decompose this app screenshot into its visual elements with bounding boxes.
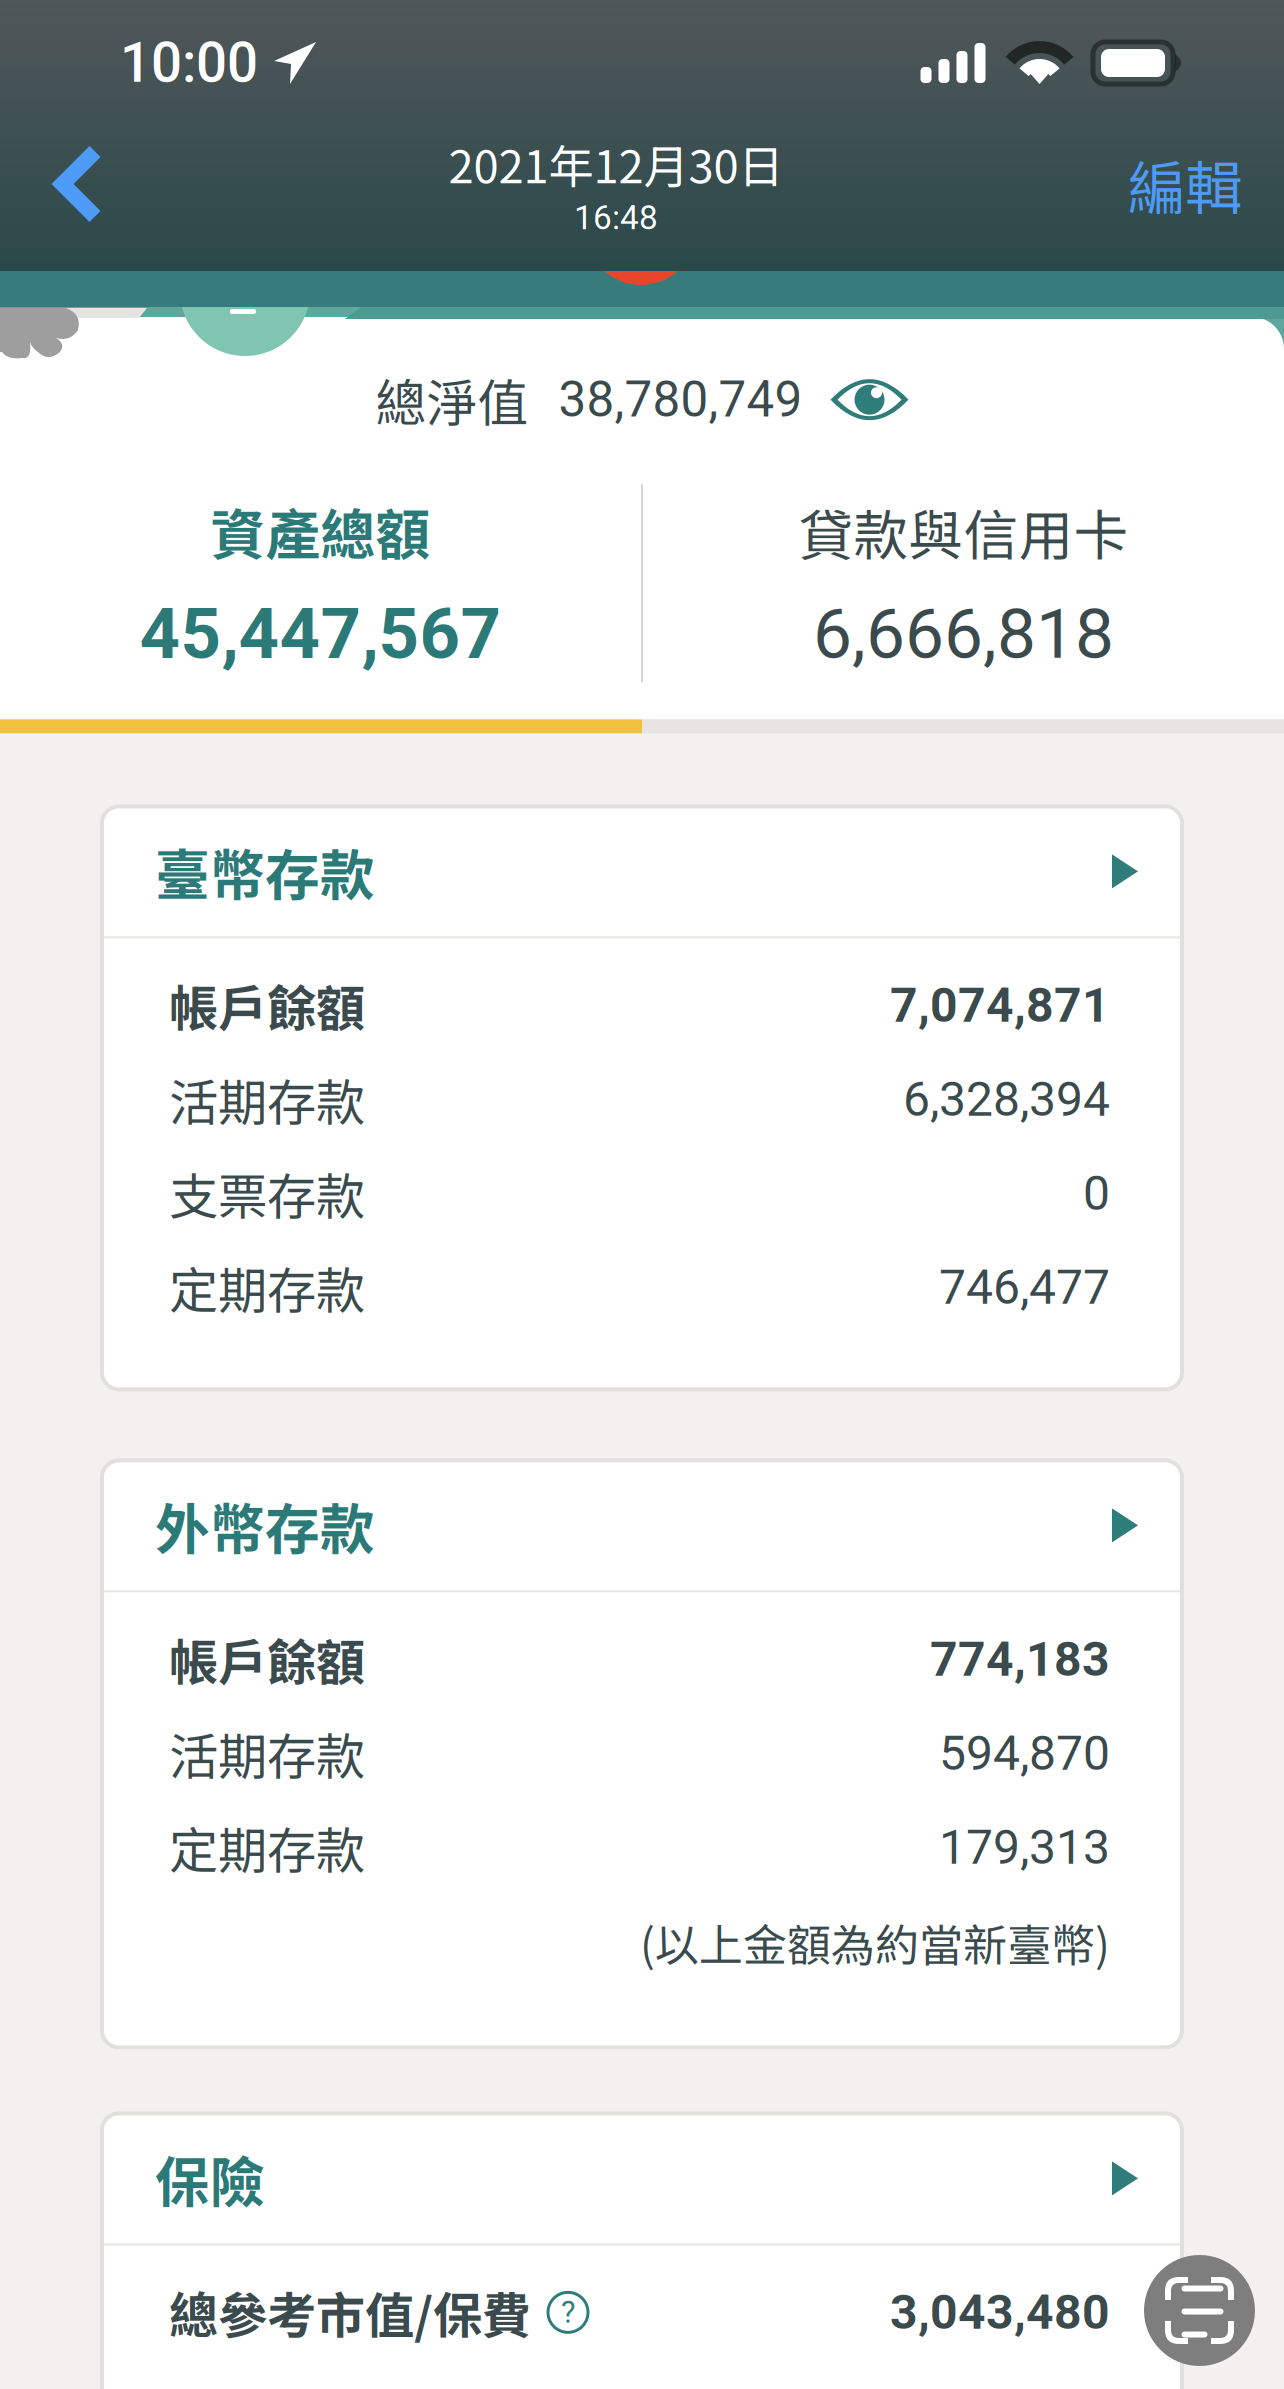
staticText: 746,477	[939, 1259, 1110, 1315]
staticText: 保險	[155, 2139, 265, 2218]
staticText: 活期存款	[169, 1718, 365, 1789]
staticText: 10:00	[120, 31, 258, 95]
staticText: 貸款與信用卡	[798, 492, 1128, 571]
staticText: 7,074,871	[890, 977, 1110, 1033]
button[interactable]: Back	[12, 126, 140, 242]
staticText: 6,328,394	[903, 1071, 1110, 1127]
staticText: 16:48	[574, 198, 658, 237]
staticText: 定期存款	[169, 1812, 365, 1883]
staticText: 帳戶餘額	[169, 970, 365, 1041]
button[interactable]: 保險	[102, 2113, 1182, 2243]
staticText: 3,043,480	[890, 2284, 1110, 2340]
staticText: 支票存款	[169, 1158, 365, 1229]
staticText: 594,870	[939, 1725, 1110, 1781]
staticText: 774,183	[930, 1631, 1110, 1687]
button[interactable]: 臺幣存款	[102, 806, 1182, 936]
staticText: 總淨值	[375, 363, 528, 436]
staticText: 資產總額	[210, 491, 430, 571]
staticText: ?	[561, 2294, 575, 2330]
staticText: 總參考市值/保費	[169, 2277, 531, 2348]
staticText: 38,780,749	[558, 371, 802, 429]
staticText: 帳戶餘額	[169, 1624, 365, 1695]
staticText: 編輯	[1128, 142, 1242, 225]
staticText: 179,313	[939, 1819, 1110, 1875]
staticText: 0	[1083, 1165, 1110, 1221]
button[interactable]: 外幣存款	[102, 1460, 1182, 1590]
button[interactable]: 編輯	[1092, 126, 1278, 242]
staticText: 外幣存款	[155, 1486, 375, 1565]
staticText: 2021年12月30日	[448, 131, 783, 196]
staticText: 臺幣存款	[155, 832, 375, 911]
staticText: (以上金額為約當新臺幣)	[640, 1910, 1110, 1974]
button[interactable]: Scan document	[1144, 2255, 1255, 2366]
staticText: 定期存款	[169, 1252, 365, 1323]
staticText: 45,447,567	[139, 592, 501, 675]
staticText: 活期存款	[169, 1064, 365, 1135]
staticText: 6,666,818	[813, 593, 1114, 674]
